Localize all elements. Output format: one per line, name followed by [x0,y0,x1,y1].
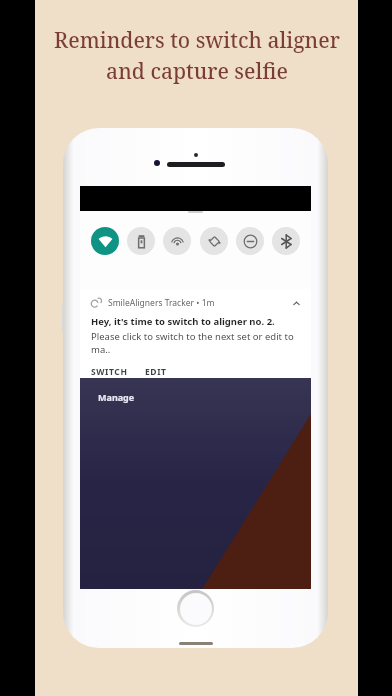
button[interactable]: SWITCH [91,365,128,378]
button[interactable]: Collapse notification [290,297,302,309]
staticText: SmileAligners Tracker • 1m [108,297,215,309]
staticText: Reminders to switch aligner and capture … [54,26,340,85]
staticText: Manage [98,391,135,403]
button[interactable]: EDIT [145,365,167,378]
button[interactable]: Flashlight [127,227,155,255]
button[interactable]: Auto-rotate [200,227,228,255]
button[interactable]: Manage [98,391,135,403]
button[interactable]: Bluetooth [272,227,300,255]
button[interactable]: Wi-Fi [91,227,119,255]
staticText: Hey, it's time to switch to aligner no. … [91,315,275,328]
button[interactable]: Do not disturb [236,227,264,255]
button[interactable]: Hotspot [163,227,191,255]
staticText: EDIT [145,366,167,377]
staticText: SWITCH [91,366,128,377]
staticText: Please click to switch to the next set o… [91,330,302,356]
